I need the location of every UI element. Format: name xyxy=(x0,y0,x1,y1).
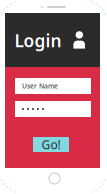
button[interactable] xyxy=(15,101,91,117)
button[interactable]: Go! xyxy=(33,137,69,152)
staticText: Go! xyxy=(41,136,60,152)
staticText: Login xyxy=(14,29,61,52)
button[interactable]: User Name xyxy=(15,78,91,94)
staticText: User Name xyxy=(22,82,58,90)
